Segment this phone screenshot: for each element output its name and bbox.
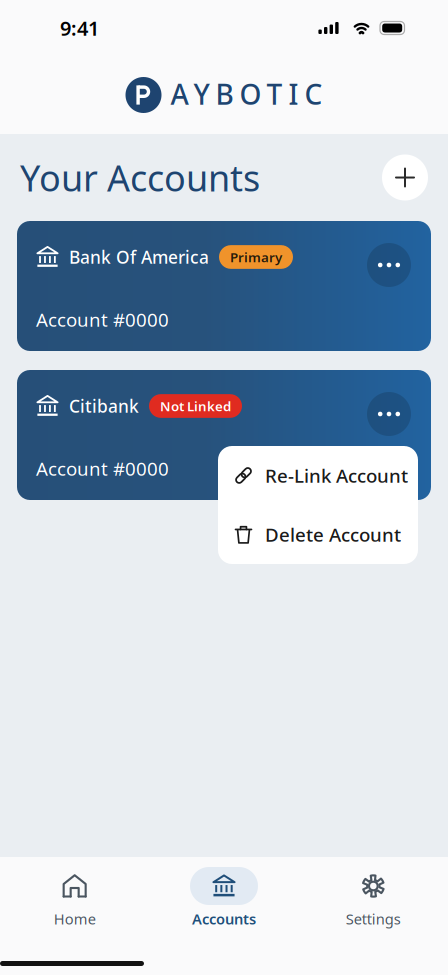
button[interactable]: More options (367, 392, 411, 436)
staticText: Delete Account (265, 522, 401, 547)
button[interactable]: More options (367, 243, 411, 287)
staticText: Citibank (69, 394, 139, 417)
staticText: Primary (230, 248, 282, 266)
staticText: Accounts (192, 909, 256, 928)
button[interactable]: Delete Account (218, 505, 418, 564)
button[interactable]: Home (0, 867, 149, 928)
staticText: AYBOTIC (170, 75, 322, 113)
staticText: Account #0000 (36, 307, 169, 332)
button[interactable]: Settings (299, 867, 448, 928)
button[interactable]: Add account (382, 154, 428, 200)
staticText: Your Accounts (20, 154, 260, 201)
staticText: Not Linked (160, 397, 231, 415)
staticText: 9:41 (60, 15, 99, 41)
staticText: Settings (346, 909, 401, 928)
button[interactable]: Accounts (149, 867, 299, 928)
button[interactable]: Re-Link Account (218, 446, 418, 505)
staticText: Re-Link Account (265, 463, 408, 488)
staticText: Home (54, 909, 96, 928)
staticText: Account #0000 (36, 456, 169, 481)
staticText: Bank Of America (69, 245, 209, 268)
